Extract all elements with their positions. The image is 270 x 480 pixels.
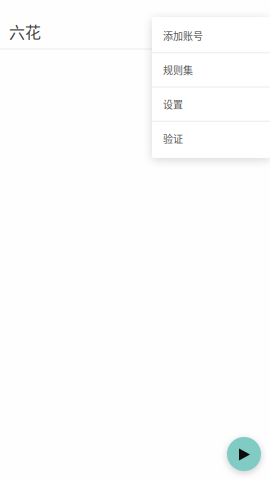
staticText: 设置 <box>163 97 183 111</box>
staticText: 添加账号 <box>163 28 203 43</box>
button[interactable]: 验证 <box>152 121 270 155</box>
button[interactable]: 添加账号 <box>152 18 270 53</box>
button[interactable]: 规则集 <box>152 53 270 87</box>
button[interactable]: Start <box>227 437 261 471</box>
staticText: 规则集 <box>163 63 193 77</box>
button[interactable]: 设置 <box>152 87 270 121</box>
staticText: 六花 <box>9 20 41 43</box>
staticText: 验证 <box>163 131 183 146</box>
